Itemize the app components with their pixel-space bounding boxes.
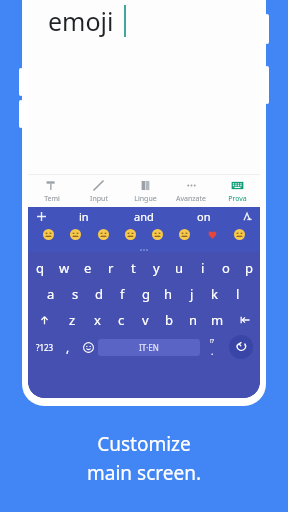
button[interactable]: z	[60, 307, 85, 333]
button[interactable]: ,	[58, 333, 78, 361]
button[interactable]: Shift	[28, 307, 60, 333]
button[interactable]: Prova	[214, 175, 260, 207]
staticText: t	[131, 259, 136, 277]
button[interactable]: !?	[200, 333, 224, 361]
staticText: r	[108, 259, 114, 277]
staticText: w	[59, 259, 70, 277]
staticText: m	[211, 311, 224, 329]
button[interactable]: q	[28, 255, 52, 281]
button[interactable]: Emoji	[151, 228, 164, 241]
staticText: on	[197, 209, 211, 224]
button[interactable]: IT·EN	[98, 339, 200, 356]
button[interactable]: v	[133, 307, 157, 333]
button[interactable]: ?123	[31, 333, 58, 361]
button[interactable]: t	[122, 255, 145, 281]
button[interactable]: Emoji	[69, 228, 82, 241]
button[interactable]: Emoji	[124, 228, 137, 241]
button[interactable]: in	[54, 207, 114, 226]
staticText: main screen.	[87, 460, 201, 486]
button[interactable]: k	[203, 281, 226, 307]
staticText: v	[142, 311, 149, 329]
button[interactable]: y	[145, 255, 168, 281]
staticText: q	[36, 259, 44, 277]
staticText: z	[69, 311, 76, 329]
staticText: u	[175, 259, 184, 277]
staticText: Input	[90, 194, 108, 204]
staticText: and	[134, 209, 154, 224]
button[interactable]: e	[76, 255, 99, 281]
staticText: s	[72, 285, 79, 303]
button[interactable]: and	[114, 207, 174, 226]
staticText: k	[211, 285, 218, 303]
button[interactable]: l	[226, 281, 249, 307]
button[interactable]: Lingue	[122, 175, 168, 207]
staticText: e	[84, 259, 92, 277]
button[interactable]: on	[174, 207, 234, 226]
staticText: x	[94, 311, 101, 329]
button[interactable]: p	[237, 255, 260, 281]
staticText: Customize	[97, 431, 191, 457]
staticText: IT·EN	[139, 342, 159, 353]
staticText: Temi	[44, 194, 60, 204]
button[interactable]: m	[205, 307, 229, 333]
staticText: .	[211, 345, 214, 357]
button[interactable]: Input	[75, 175, 122, 207]
staticText: d	[95, 285, 103, 303]
button[interactable]: f	[111, 281, 134, 307]
staticText: in	[79, 209, 89, 224]
staticText: p	[245, 259, 253, 277]
button[interactable]: Avanzate	[168, 175, 214, 207]
button[interactable]: n	[181, 307, 205, 333]
button[interactable]: w	[52, 255, 76, 281]
button[interactable]: d	[87, 281, 111, 307]
button[interactable]: Add	[28, 207, 54, 226]
staticText: f	[120, 285, 125, 303]
button[interactable]: u	[168, 255, 191, 281]
staticText: i	[201, 259, 205, 277]
staticText: ,	[66, 339, 70, 355]
staticText: a	[47, 285, 55, 303]
button[interactable]: o	[214, 255, 237, 281]
button[interactable]: s	[63, 281, 87, 307]
button[interactable]: Emoji	[233, 228, 246, 241]
staticText: o	[222, 259, 230, 277]
staticText: l	[236, 285, 240, 303]
staticText: c	[118, 311, 125, 329]
staticText: b	[165, 311, 173, 329]
button[interactable]: Heart emoji	[206, 228, 219, 241]
button[interactable]: Voice input	[234, 207, 260, 226]
staticText: Prova	[228, 194, 247, 204]
button[interactable]: Backspace	[229, 307, 260, 333]
button[interactable]: c	[109, 307, 133, 333]
button[interactable]: Emoji	[42, 228, 55, 241]
button[interactable]: r	[99, 255, 122, 281]
staticText: Avanzate	[176, 194, 206, 204]
button[interactable]: Emoji keyboard	[78, 333, 98, 361]
staticText: h	[164, 285, 173, 303]
staticText: j	[190, 285, 194, 303]
button[interactable]: Emoji	[178, 228, 191, 241]
button[interactable]: Temi	[28, 175, 75, 207]
staticText: Lingue	[134, 194, 157, 204]
staticText: n	[189, 311, 198, 329]
button[interactable]: x	[85, 307, 109, 333]
staticText: !?	[210, 337, 215, 345]
button[interactable]: Enter	[224, 333, 257, 361]
button[interactable]: h	[157, 281, 180, 307]
button[interactable]: j	[180, 281, 203, 307]
staticText: y	[153, 259, 160, 277]
button[interactable]: i	[191, 255, 214, 281]
staticText: ?123	[36, 342, 54, 353]
button[interactable]: b	[157, 307, 181, 333]
staticText: g	[142, 285, 150, 303]
staticText: emoji	[48, 4, 114, 38]
button[interactable]: g	[134, 281, 157, 307]
button[interactable]: Emoji	[97, 228, 110, 241]
button[interactable]: a	[39, 281, 63, 307]
